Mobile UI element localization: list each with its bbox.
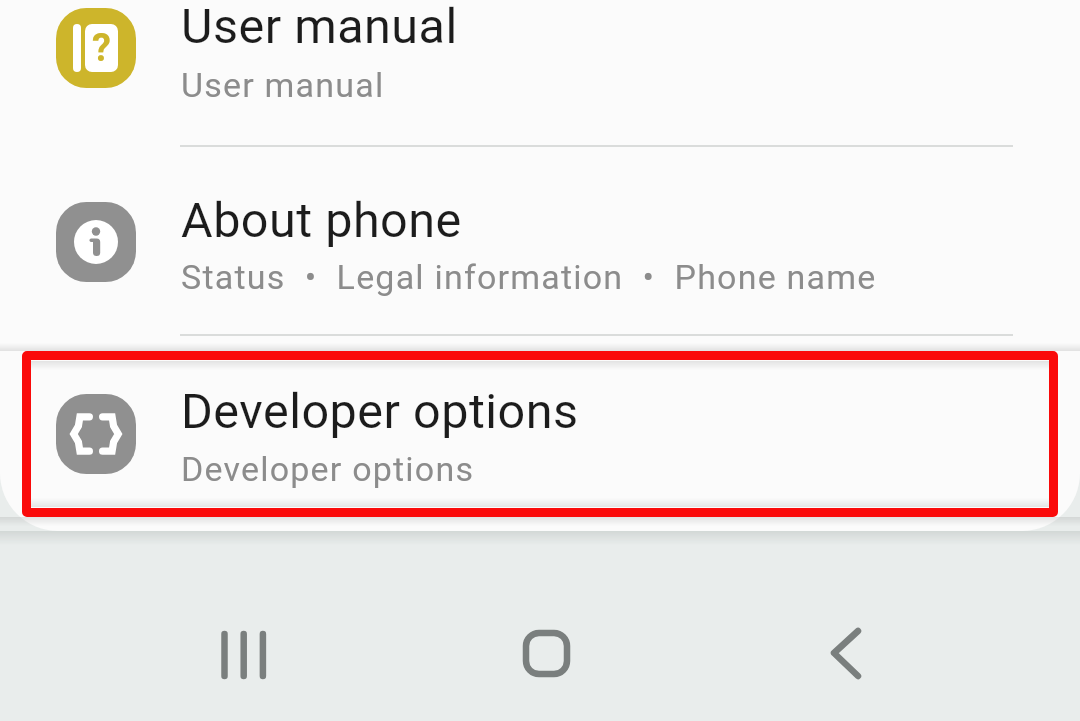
button[interactable]	[498, 610, 594, 700]
button[interactable]: Developer options	[0, 335, 1080, 525]
staticText: ?	[92, 26, 111, 71]
staticText: User manual	[181, 0, 458, 55]
staticText: Status • Legal information • Phone name	[181, 257, 877, 297]
button[interactable]	[800, 610, 896, 700]
staticText: User manual	[181, 65, 385, 105]
button[interactable]: ?	[0, 0, 1080, 145]
staticText: Developer options	[181, 449, 475, 489]
button[interactable]: About phone	[0, 145, 1080, 335]
staticText: Developer options	[181, 383, 579, 440]
button[interactable]	[196, 610, 292, 700]
staticText: About phone	[181, 192, 462, 249]
